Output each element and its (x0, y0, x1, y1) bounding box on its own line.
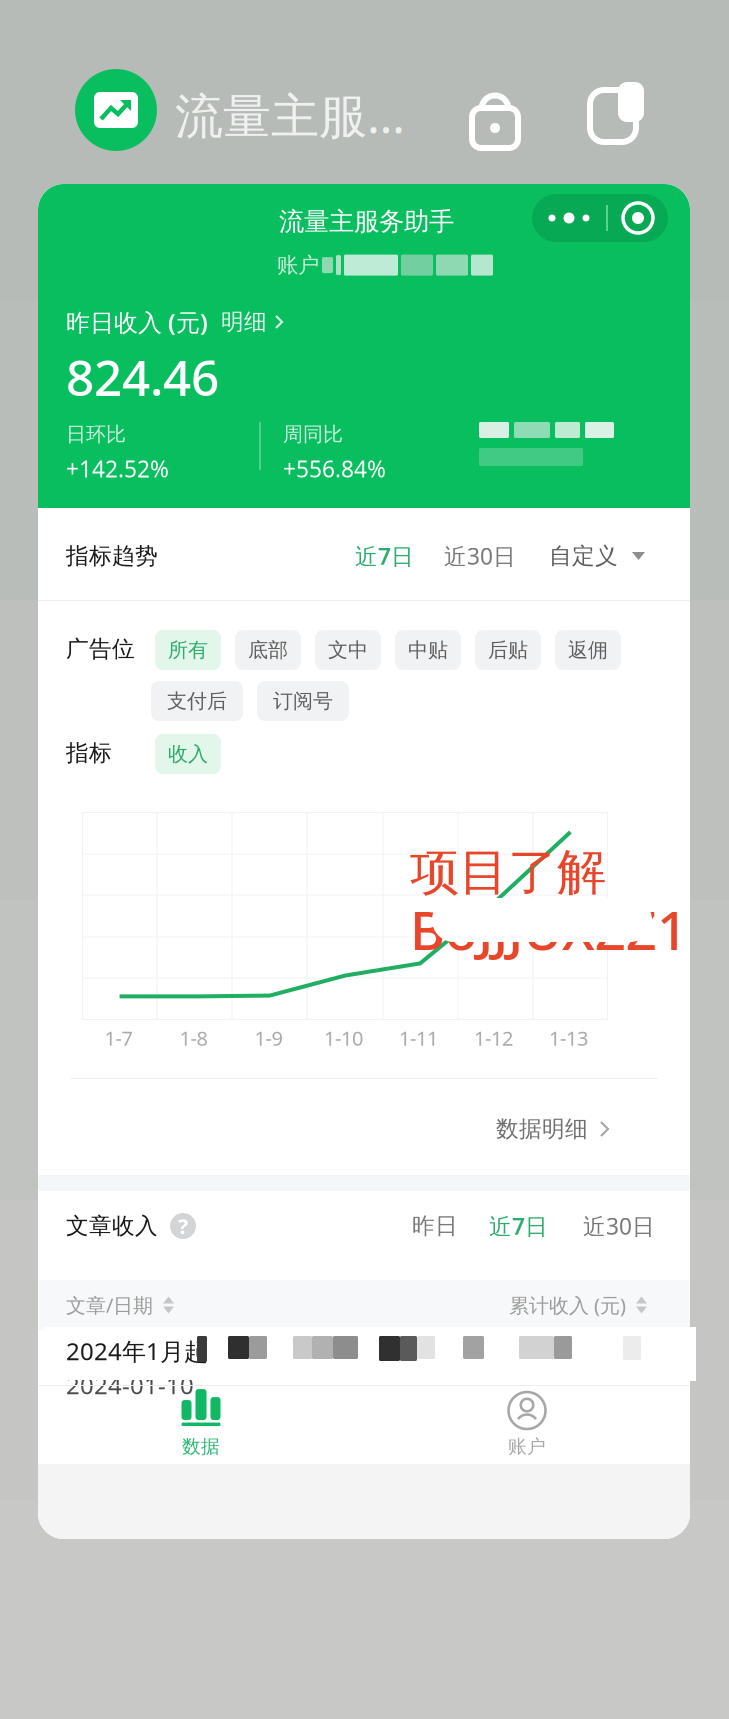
button[interactable]: 所有 (155, 630, 221, 670)
button[interactable]: 数据 (38, 1386, 364, 1464)
staticText: 日环比 (66, 422, 126, 447)
staticText: 1-8 (179, 1025, 207, 1051)
staticText: 824.46 (66, 344, 219, 409)
button[interactable]: 账户 (364, 1386, 690, 1464)
staticText: 周同比 (283, 422, 343, 447)
button[interactable]: 中贴 (395, 630, 461, 670)
staticText: 1-13 (549, 1025, 588, 1051)
staticText: ? (178, 1212, 188, 1240)
staticText: 返佣 (568, 638, 608, 662)
button[interactable]: 近30日 (583, 1206, 655, 1246)
staticText: 文中 (328, 638, 368, 662)
staticText: 数据明细 (496, 1115, 588, 1143)
staticText: 指标 (66, 739, 112, 767)
staticText: 1-7 (104, 1025, 132, 1051)
staticText: 2024-01-10 (66, 1369, 194, 1401)
staticText: 文章收入 (66, 1212, 158, 1240)
button[interactable]: 近30日 (444, 536, 516, 576)
staticText: 累计收入 (元) (509, 1292, 626, 1318)
staticText: 订阅号 (273, 689, 333, 713)
staticText: 流量主服… (175, 83, 405, 147)
staticText: 支付后 (167, 689, 227, 713)
button[interactable]: 数据明细 (496, 1109, 610, 1149)
button[interactable]: 自定义 (549, 537, 645, 575)
staticText: 数据 (182, 1435, 220, 1458)
button[interactable]: Split view (586, 78, 640, 138)
staticText: 账户 (277, 252, 319, 278)
button[interactable]: 支付后 (151, 681, 243, 721)
staticText: 近30日 (583, 1211, 655, 1241)
staticText: 文章/日期 (66, 1292, 153, 1318)
staticText: 2024年1月起 (66, 1335, 208, 1367)
button[interactable]: 近7日 (489, 1206, 548, 1246)
staticText: 近30日 (444, 541, 516, 571)
staticText: 中贴 (408, 638, 448, 662)
button[interactable]: 明细 (221, 308, 284, 336)
staticText: 昨日收入 (元) (66, 306, 208, 338)
staticText: 后贴 (488, 638, 528, 662)
button[interactable]: 底部 (235, 630, 301, 670)
staticText: 项目了解 (410, 842, 606, 903)
staticText: +142.52% (66, 454, 169, 484)
staticText: 所有 (168, 638, 208, 662)
staticText: 自定义 (549, 542, 618, 570)
staticText: 指标趋势 (66, 542, 158, 570)
staticText: 1-10 (324, 1025, 363, 1051)
staticText: 底部 (248, 638, 288, 662)
staticText: 广告位 (66, 635, 135, 663)
button[interactable]: Lock (472, 78, 518, 138)
staticText: 近7日 (355, 541, 414, 571)
staticText: 收入 (168, 742, 208, 766)
staticText: 1-12 (474, 1025, 513, 1051)
staticText: 1-11 (399, 1025, 438, 1051)
staticText: 明细 (221, 308, 267, 336)
button[interactable]: 订阅号 (257, 681, 349, 721)
button[interactable]: 后贴 (475, 630, 541, 670)
staticText: 昨日 (412, 1212, 458, 1240)
button[interactable]: 返佣 (555, 630, 621, 670)
staticText: 账户 (508, 1435, 546, 1458)
staticText: BoJJJUXZZ13 (410, 894, 719, 965)
button[interactable]: 近7日 (355, 536, 414, 576)
button[interactable]: Mini program menu (532, 194, 668, 242)
button[interactable]: 昨日 (412, 1206, 458, 1246)
staticText: 近7日 (489, 1211, 548, 1241)
staticText: 流量主服务助手 (279, 206, 454, 237)
button[interactable]: 文中 (315, 630, 381, 670)
button[interactable]: 收入 (155, 734, 221, 774)
staticText: +556.84% (283, 454, 386, 484)
staticText: 1-9 (254, 1025, 282, 1051)
